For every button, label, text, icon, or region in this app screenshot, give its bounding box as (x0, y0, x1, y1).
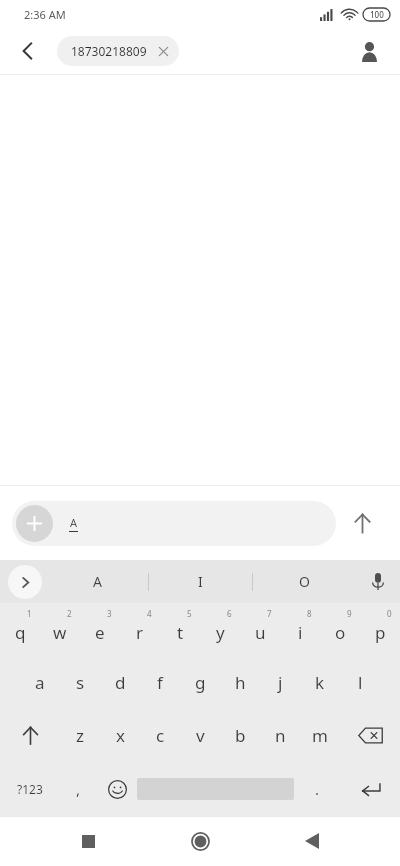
staticText: v (196, 724, 205, 747)
button[interactable]: Space (137, 762, 294, 816)
staticText: 5 (187, 608, 192, 619)
button[interactable]: O (253, 560, 356, 603)
button[interactable]: f (140, 656, 180, 709)
staticText: u (255, 621, 266, 644)
button[interactable]: u (240, 603, 280, 656)
button[interactable]: x (100, 709, 140, 762)
staticText: i (298, 621, 303, 644)
button[interactable]: Recent apps (64, 817, 112, 865)
staticText: 9 (347, 608, 352, 619)
button[interactable]: t (160, 603, 200, 656)
button[interactable]: m (300, 709, 340, 762)
button[interactable]: o (320, 603, 360, 656)
button[interactable]: I (149, 560, 252, 603)
staticText: y (216, 621, 225, 644)
staticText: n (275, 724, 286, 747)
button[interactable]: Home (176, 817, 224, 865)
button[interactable]: v (180, 709, 220, 762)
staticText: z (76, 724, 84, 747)
staticText: b (235, 724, 246, 747)
button[interactable]: h (220, 656, 260, 709)
button[interactable]: Add attachment (16, 505, 53, 542)
staticText: m (312, 724, 328, 747)
button[interactable]: Emoji (98, 762, 137, 816)
staticText: f (157, 671, 163, 694)
staticText: s (76, 671, 85, 694)
button[interactable]: A (46, 560, 148, 603)
staticText: . (315, 779, 320, 799)
button[interactable]: Contacts (350, 32, 388, 70)
staticText: l (358, 671, 363, 694)
button[interactable]: q (0, 603, 40, 656)
button[interactable]: Add attachment (12, 501, 336, 546)
staticText: x (116, 724, 125, 747)
button[interactable]: Send (336, 497, 388, 549)
button[interactable]: b (220, 709, 260, 762)
button[interactable]: e (80, 603, 120, 656)
button[interactable]: z (60, 709, 100, 762)
staticText: h (235, 671, 246, 694)
button[interactable]: Back (288, 817, 336, 865)
staticText: t (177, 621, 184, 644)
staticText: o (335, 621, 346, 644)
staticText: 3 (107, 608, 112, 619)
staticText: 6 (227, 608, 232, 619)
staticText: c (156, 724, 165, 747)
staticText: p (375, 621, 386, 644)
staticText: 100 (370, 9, 384, 20)
staticText: k (315, 671, 325, 694)
button[interactable]: y (200, 603, 240, 656)
button[interactable]: 18730218809 (57, 36, 179, 66)
staticText: A (93, 572, 102, 591)
button[interactable]: l (340, 656, 380, 709)
button[interactable]: s (60, 656, 100, 709)
staticText: 0 (387, 608, 392, 619)
button[interactable]: d (100, 656, 140, 709)
button[interactable]: Voice input (356, 560, 400, 603)
button[interactable]: Enter (341, 762, 400, 816)
staticText: 18730218809 (71, 43, 147, 59)
staticText: g (195, 671, 206, 694)
staticText: 2:36 AM (24, 7, 66, 22)
button[interactable]: , (59, 762, 98, 816)
staticText: 1 (27, 608, 32, 619)
button[interactable]: c (140, 709, 180, 762)
button[interactable]: Backspace (340, 709, 400, 762)
staticText: O (299, 572, 310, 591)
staticText: r (136, 621, 144, 644)
staticText: d (115, 671, 126, 694)
button[interactable]: Expand suggestions (8, 565, 42, 599)
button[interactable]: a (20, 656, 60, 709)
staticText: , (76, 779, 81, 799)
staticText: q (15, 621, 26, 644)
button[interactable]: ?123 (0, 762, 59, 816)
button[interactable]: n (260, 709, 300, 762)
button[interactable]: j (260, 656, 300, 709)
button[interactable]: w (40, 603, 80, 656)
staticText: e (95, 621, 105, 644)
button[interactable]: k (300, 656, 340, 709)
staticText: a (35, 671, 45, 694)
staticText: w (53, 621, 67, 644)
button[interactable]: . (294, 762, 341, 816)
staticText: I (198, 572, 203, 591)
staticText: j (278, 671, 283, 694)
staticText: 8 (307, 608, 312, 619)
button[interactable]: r (120, 603, 160, 656)
button[interactable]: g (180, 656, 220, 709)
staticText: A (70, 515, 78, 530)
staticText: 2 (67, 608, 72, 619)
button[interactable]: Shift (0, 709, 60, 762)
staticText: 4 (147, 608, 152, 619)
button[interactable]: i (280, 603, 320, 656)
staticText: ?123 (17, 781, 43, 797)
button[interactable]: Back (8, 31, 48, 71)
button[interactable]: p (360, 603, 400, 656)
staticText: 7 (267, 608, 272, 619)
